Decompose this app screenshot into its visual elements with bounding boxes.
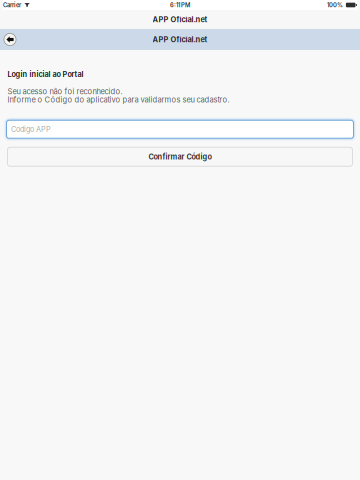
staticText: Login inicial ao Portal	[7, 70, 83, 79]
staticText: APP Oficial.net	[152, 35, 207, 44]
staticText: 100%	[327, 1, 343, 9]
button[interactable]: Confirmar Código	[7, 147, 352, 166]
staticText: Confirmar Código	[148, 152, 211, 161]
staticText: Carrier	[3, 1, 21, 9]
staticText: Seu acesso não foi reconhecido. Informe …	[7, 87, 229, 104]
staticText: 6:11 PM	[170, 1, 190, 9]
button[interactable]: Back	[0, 29, 19, 50]
staticText: Codigo APP	[11, 125, 51, 134]
staticText: APP Oficial.net	[152, 15, 207, 24]
